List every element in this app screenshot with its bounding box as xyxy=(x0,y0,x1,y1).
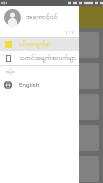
staticText: 1.1.0 xyxy=(64,30,74,35)
button[interactable]: ပင်မစာမျက်နှာ xyxy=(0,38,79,51)
button[interactable]: သတင်းအချက်အလက်များ xyxy=(0,51,79,65)
staticText: ပင်မစာမျက်နှာ xyxy=(19,40,51,49)
staticText: အခြား xyxy=(5,69,16,76)
staticText: English xyxy=(19,81,40,89)
button[interactable]: အကောင့်ဝင် xyxy=(0,6,79,28)
staticText: သတင်းအချက်အလက်များ xyxy=(19,54,77,63)
staticText: အကောင့်ဝင် xyxy=(26,12,58,22)
button[interactable]: English xyxy=(0,78,79,92)
